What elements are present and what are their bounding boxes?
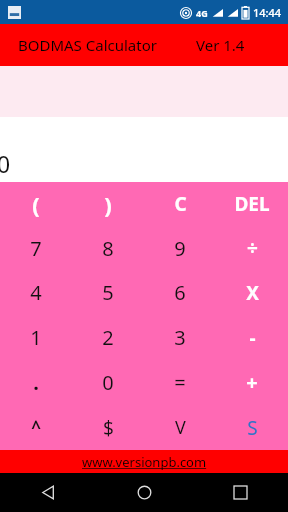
staticText: - (249, 325, 256, 351)
button[interactable]: ^ (0, 405, 72, 450)
button[interactable]: Recent apps (192, 473, 288, 512)
button[interactable]: ( (0, 182, 72, 226)
staticText: 6 (174, 279, 186, 306)
button[interactable]: 9 (144, 226, 216, 270)
staticText: ) (104, 189, 112, 219)
button[interactable]: Back (0, 473, 96, 512)
staticText: $ (103, 415, 114, 441)
staticText: 4G (196, 7, 208, 19)
button[interactable]: = (144, 360, 216, 405)
staticText: = (174, 369, 186, 396)
button[interactable]: X (216, 270, 288, 315)
staticText: 0 (102, 369, 114, 396)
button[interactable]: 3 (144, 315, 216, 360)
staticText: X (246, 280, 259, 306)
button[interactable]: 7 (0, 226, 72, 270)
staticText: 7 (30, 235, 42, 262)
button[interactable]: 4 (0, 270, 72, 315)
staticText: Ver 1.4 (196, 35, 245, 55)
staticText: 2 (102, 324, 114, 351)
staticText: ( (32, 189, 40, 219)
button[interactable]: 5 (72, 270, 144, 315)
button[interactable]: 1 (0, 315, 72, 360)
button[interactable]: 0 (72, 360, 144, 405)
button[interactable]: 6 (144, 270, 216, 315)
button[interactable]: ) (72, 182, 144, 226)
staticText: 4 (30, 279, 42, 306)
staticText: 0 (0, 148, 11, 179)
staticText: ÷ (247, 235, 258, 261)
button[interactable]: - (216, 315, 288, 360)
staticText: www.versionpb.com (82, 453, 207, 471)
staticText: + (246, 369, 258, 396)
staticText: BODMAS Calculator (18, 35, 157, 55)
staticText: V (175, 415, 186, 440)
staticText: 9 (174, 235, 186, 262)
button[interactable]: www.versionpb.com (0, 450, 288, 473)
button[interactable]: $ (72, 405, 144, 450)
button[interactable]: C (144, 182, 216, 226)
staticText: . (33, 369, 39, 396)
staticText: S (247, 415, 258, 441)
button[interactable]: 2 (72, 315, 144, 360)
staticText: 5 (102, 279, 114, 306)
button[interactable]: + (216, 360, 288, 405)
button[interactable]: 8 (72, 226, 144, 270)
button[interactable]: ÷ (216, 226, 288, 270)
staticText: DEL (234, 191, 270, 217)
staticText: 3 (174, 324, 186, 351)
staticText: 1 (30, 324, 42, 351)
button[interactable]: S (216, 405, 288, 450)
staticText: C (174, 191, 187, 217)
button[interactable]: . (0, 360, 72, 405)
staticText: ^ (31, 416, 41, 439)
button[interactable]: Home (96, 473, 192, 512)
button[interactable]: V (144, 405, 216, 450)
button[interactable]: DEL (216, 182, 288, 226)
staticText: 14:44 (253, 5, 282, 20)
staticText: 8 (102, 235, 114, 262)
